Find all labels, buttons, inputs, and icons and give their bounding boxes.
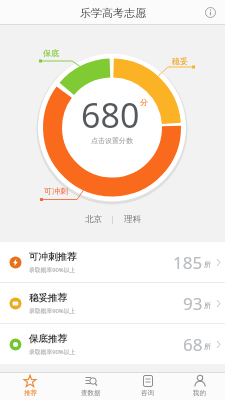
button[interactable] [202, 4, 219, 21]
staticText: 680 [81, 92, 140, 138]
staticText: 北京 [85, 214, 102, 225]
button[interactable]: 保底推荐 [0, 324, 225, 364]
staticText: 稳妥推荐 [29, 292, 67, 304]
button[interactable]: 北京 [85, 214, 141, 225]
staticText: 录取概率90%以上 [29, 307, 76, 315]
staticText: 所 [204, 260, 211, 269]
staticText: 理科 [124, 214, 141, 225]
button[interactable]: 可冲刺推荐 [0, 242, 225, 282]
staticText: 推荐 [24, 389, 37, 397]
staticText: 所 [204, 342, 211, 351]
staticText: 185 [173, 251, 203, 274]
staticText: 我的 [193, 389, 206, 397]
staticText: 录取概率90%以上 [29, 348, 76, 356]
staticText: 丨 [109, 215, 117, 225]
staticText: 保底推荐 [29, 333, 67, 345]
staticText: 所 [204, 301, 211, 310]
button[interactable]: 推荐 [0, 372, 60, 400]
button[interactable]: 我的 [174, 372, 225, 400]
staticText: 查数据 [81, 389, 101, 397]
staticText: 93 [183, 292, 203, 315]
staticText: 乐学高考志愿 [80, 6, 146, 20]
staticText: 稳妥 [172, 56, 188, 66]
button[interactable]: 稳妥推荐 [0, 283, 225, 323]
button[interactable]: 保底 [0, 25, 225, 242]
staticText: 分 [140, 97, 148, 107]
staticText: 点击设置分数 [91, 136, 133, 145]
staticText: 保底 [43, 48, 59, 58]
button[interactable]: 咨询 [121, 372, 174, 400]
staticText: 咨询 [141, 389, 154, 397]
staticText: 68 [183, 333, 203, 356]
button[interactable]: 680 [81, 92, 148, 147]
staticText: 可冲刺 [44, 186, 68, 196]
staticText: 可冲刺推荐 [29, 251, 77, 263]
button[interactable]: 查数据 [60, 372, 121, 400]
staticText: 录取概率90%以上 [29, 266, 76, 274]
